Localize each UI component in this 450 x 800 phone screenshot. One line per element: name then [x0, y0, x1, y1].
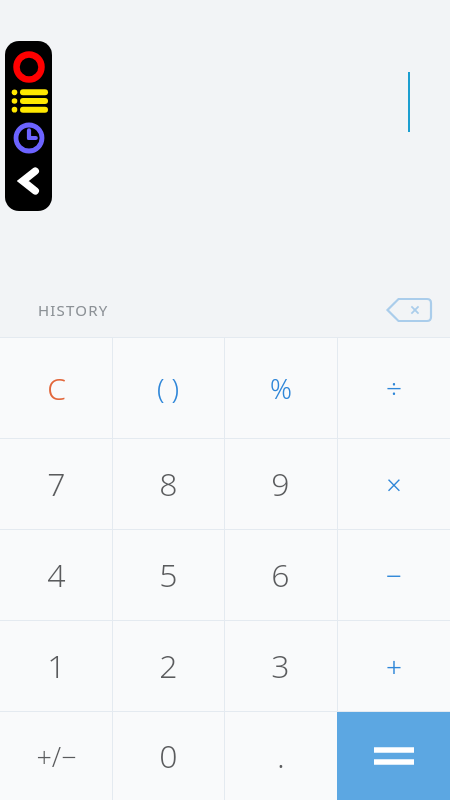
button[interactable]: 9: [224, 439, 337, 529]
button[interactable]: HISTORY: [30, 294, 117, 326]
staticText: %: [270, 370, 292, 407]
staticText: ÷: [386, 369, 402, 407]
staticText: ×: [386, 466, 402, 503]
staticText: 2: [159, 644, 178, 688]
button[interactable]: Record: [11, 49, 47, 85]
staticText: −: [386, 556, 402, 594]
button[interactable]: ( ): [112, 338, 224, 438]
staticText: +/−: [36, 738, 77, 775]
staticText: 6: [271, 553, 290, 597]
button[interactable]: Equals: [337, 712, 450, 800]
staticText: .: [277, 734, 285, 778]
staticText: HISTORY: [38, 300, 109, 320]
staticText: 4: [47, 553, 66, 597]
staticText: 8: [159, 462, 178, 506]
button[interactable]: 2: [112, 621, 224, 711]
staticText: 9: [271, 462, 290, 506]
button[interactable]: 6: [224, 530, 337, 620]
button[interactable]: .: [224, 712, 337, 800]
button[interactable]: C: [0, 338, 112, 438]
button[interactable]: +: [337, 621, 450, 711]
button[interactable]: Back: [9, 161, 49, 201]
button[interactable]: %: [224, 338, 337, 438]
staticText: C: [47, 368, 66, 409]
button[interactable]: ×: [337, 439, 450, 529]
button[interactable]: 1: [0, 621, 112, 711]
staticText: ( ): [157, 370, 179, 407]
staticText: 3: [271, 644, 290, 688]
button[interactable]: Backspace: [382, 293, 436, 327]
button[interactable]: 0: [112, 712, 224, 800]
button[interactable]: 4: [0, 530, 112, 620]
button[interactable]: History: [10, 119, 48, 157]
staticText: 7: [47, 462, 66, 506]
button[interactable]: 5: [112, 530, 224, 620]
staticText: +: [386, 647, 402, 685]
staticText: 5: [159, 553, 178, 597]
button[interactable]: ÷: [337, 338, 450, 438]
button[interactable]: List: [8, 85, 50, 117]
button[interactable]: 7: [0, 439, 112, 529]
staticText: 0: [159, 734, 178, 778]
button[interactable]: 3: [224, 621, 337, 711]
button[interactable]: 8: [112, 439, 224, 529]
staticText: 1: [47, 644, 66, 688]
button[interactable]: +/−: [0, 712, 112, 800]
button[interactable]: −: [337, 530, 450, 620]
